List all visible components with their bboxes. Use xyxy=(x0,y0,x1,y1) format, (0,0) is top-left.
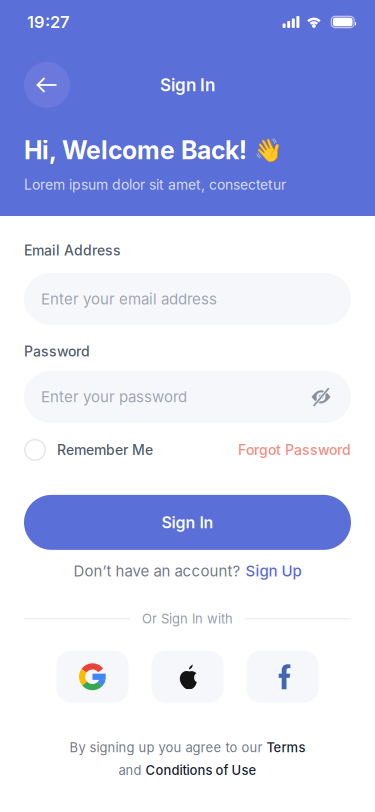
button[interactable]: Enter your password xyxy=(24,371,351,423)
staticText: Enter your email address xyxy=(41,290,217,308)
staticText: Remember Me xyxy=(57,441,153,458)
button[interactable]: Conditions of Use xyxy=(145,762,256,778)
button[interactable]: Terms xyxy=(266,740,305,755)
staticText: 19:27 xyxy=(27,12,70,32)
staticText: Or Sign In with xyxy=(142,611,233,627)
button[interactable]: Forgot Password xyxy=(238,441,351,458)
button[interactable] xyxy=(24,62,70,108)
staticText: Email Address xyxy=(24,242,121,259)
staticText: Hi, Welcome Back! xyxy=(24,135,247,165)
staticText: Sign Up xyxy=(245,562,301,580)
staticText: Sign In xyxy=(161,513,213,532)
staticText: By signing up you agree to our xyxy=(69,740,262,755)
staticText: Terms xyxy=(266,740,305,755)
button[interactable] xyxy=(151,651,223,703)
staticText: Enter your password xyxy=(41,388,187,406)
button[interactable]: Remember Me xyxy=(24,439,153,461)
staticText: Password xyxy=(24,343,90,360)
button[interactable] xyxy=(56,651,128,703)
staticText: 👋 xyxy=(254,137,283,164)
button[interactable]: Enter your email address xyxy=(24,273,351,325)
staticText: Don’t have an account? xyxy=(73,562,240,580)
button[interactable]: Sign In xyxy=(24,495,351,550)
staticText: Forgot Password xyxy=(238,441,351,458)
staticText: Conditions of Use xyxy=(145,762,256,778)
staticText: Sign In xyxy=(160,75,215,95)
button[interactable] xyxy=(246,651,318,703)
staticText: and xyxy=(118,762,141,778)
button[interactable]: Sign Up xyxy=(245,562,301,580)
staticText: Lorem ipsum dolor sit amet, consectetur xyxy=(24,176,286,193)
